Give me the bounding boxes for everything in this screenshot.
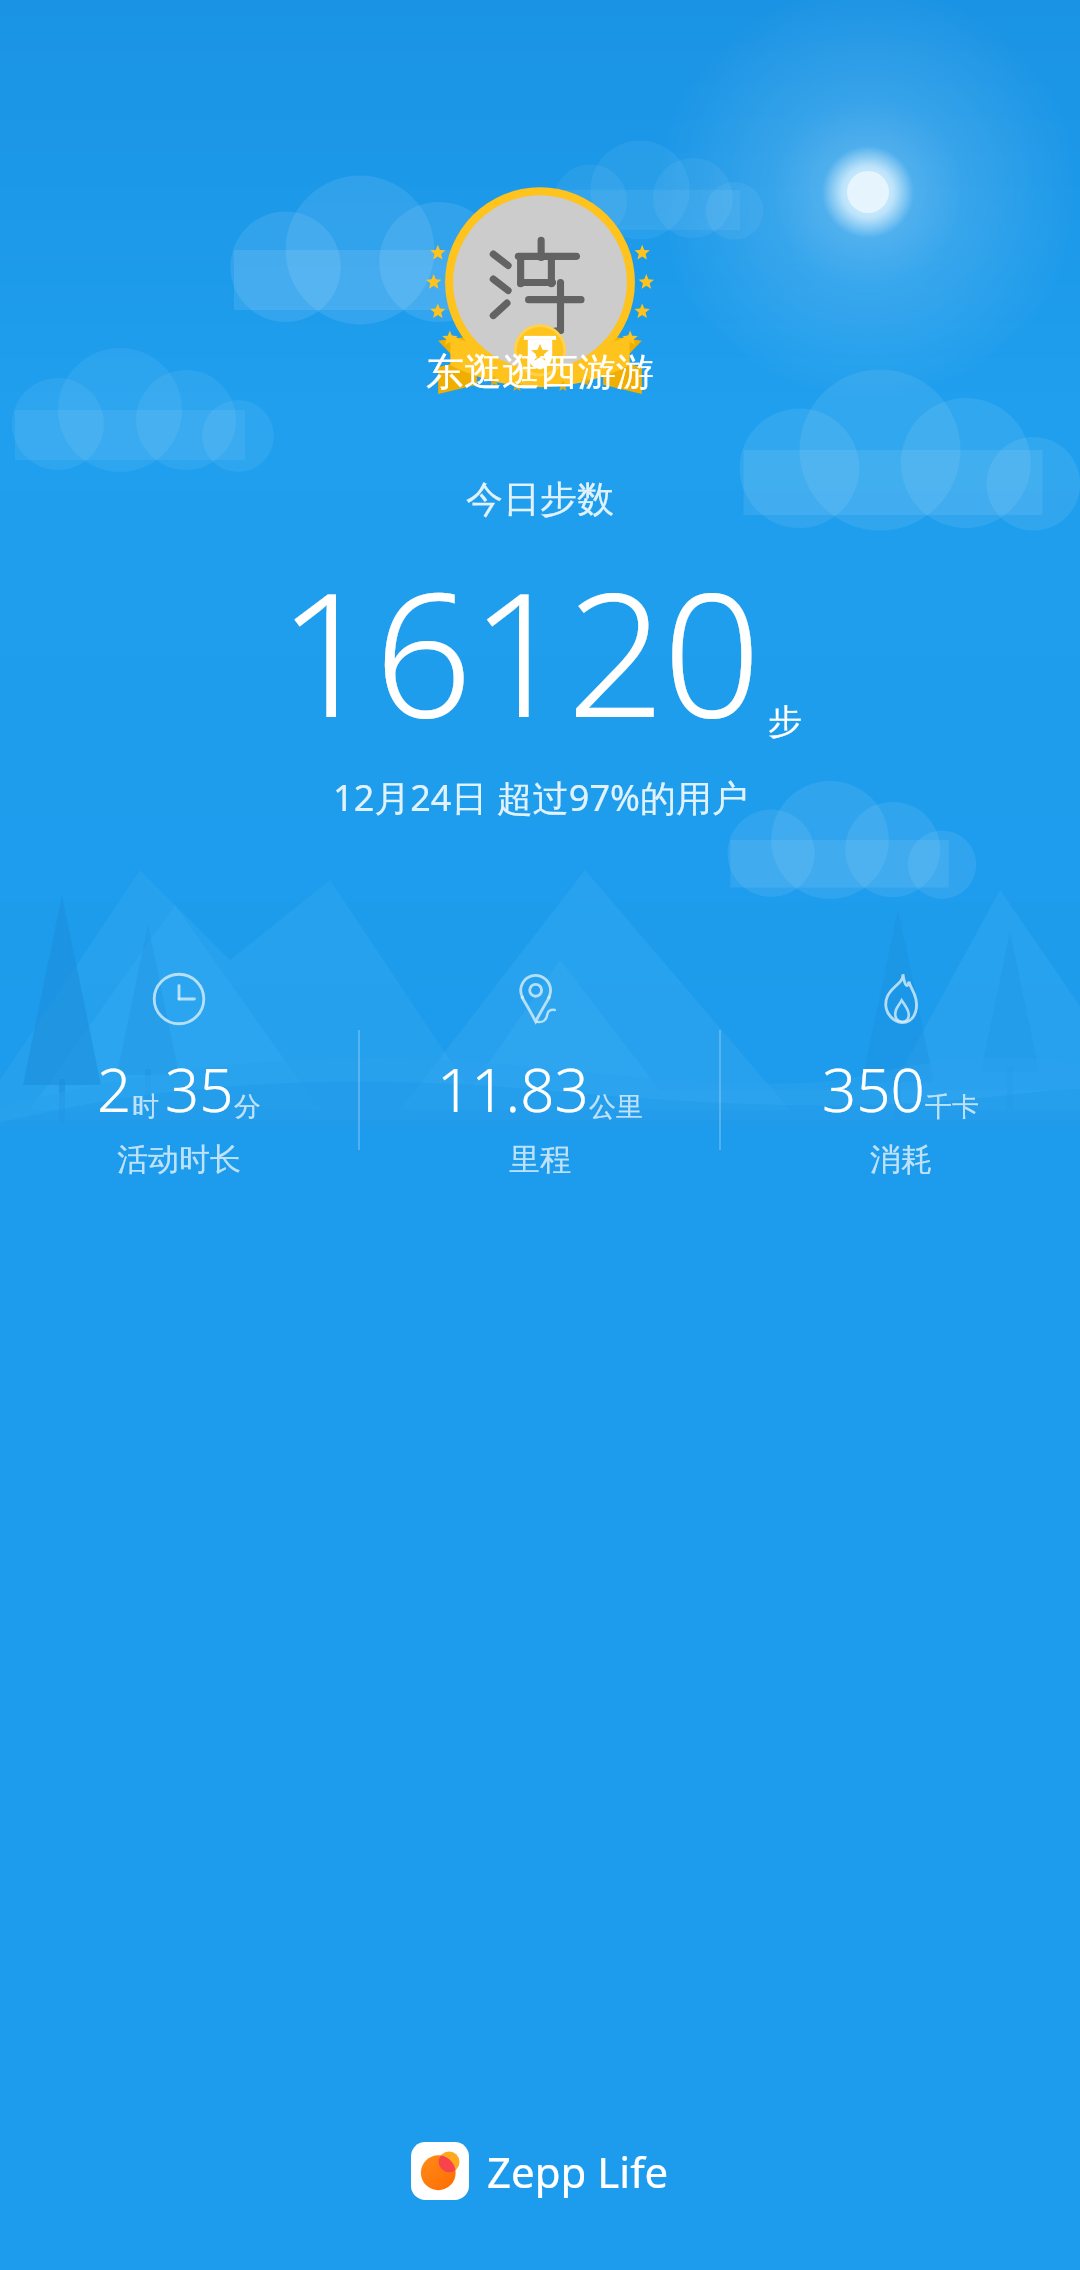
staticText: 活动时长: [117, 1140, 241, 1179]
staticText: 消耗: [870, 1140, 932, 1179]
staticText: 时: [132, 1090, 159, 1124]
button[interactable]: 里程: [360, 968, 719, 1179]
staticText: 千卡: [925, 1090, 979, 1124]
staticText: 2: [97, 1048, 132, 1130]
staticText: 16120: [278, 533, 760, 767]
staticText: 350: [822, 1048, 925, 1130]
staticText: 11.83: [437, 1048, 589, 1130]
button[interactable]: Zepp Life: [399, 2134, 681, 2208]
staticText: 里程: [509, 1140, 571, 1179]
staticText: 12月24日 超过97%的用户: [333, 773, 748, 822]
staticText: 公里: [589, 1090, 643, 1124]
staticText: 步: [768, 700, 802, 743]
staticText: 35: [165, 1048, 234, 1130]
button[interactable]: 成就徽章: [435, 182, 645, 342]
button[interactable]: 消耗: [721, 968, 1080, 1179]
button[interactable]: 活动时长: [0, 968, 358, 1179]
staticText: 东逛逛西游游: [426, 348, 654, 396]
staticText: 分: [234, 1090, 261, 1124]
staticText: Zepp Life: [487, 2143, 669, 2200]
staticText: 今日步数: [466, 476, 614, 523]
